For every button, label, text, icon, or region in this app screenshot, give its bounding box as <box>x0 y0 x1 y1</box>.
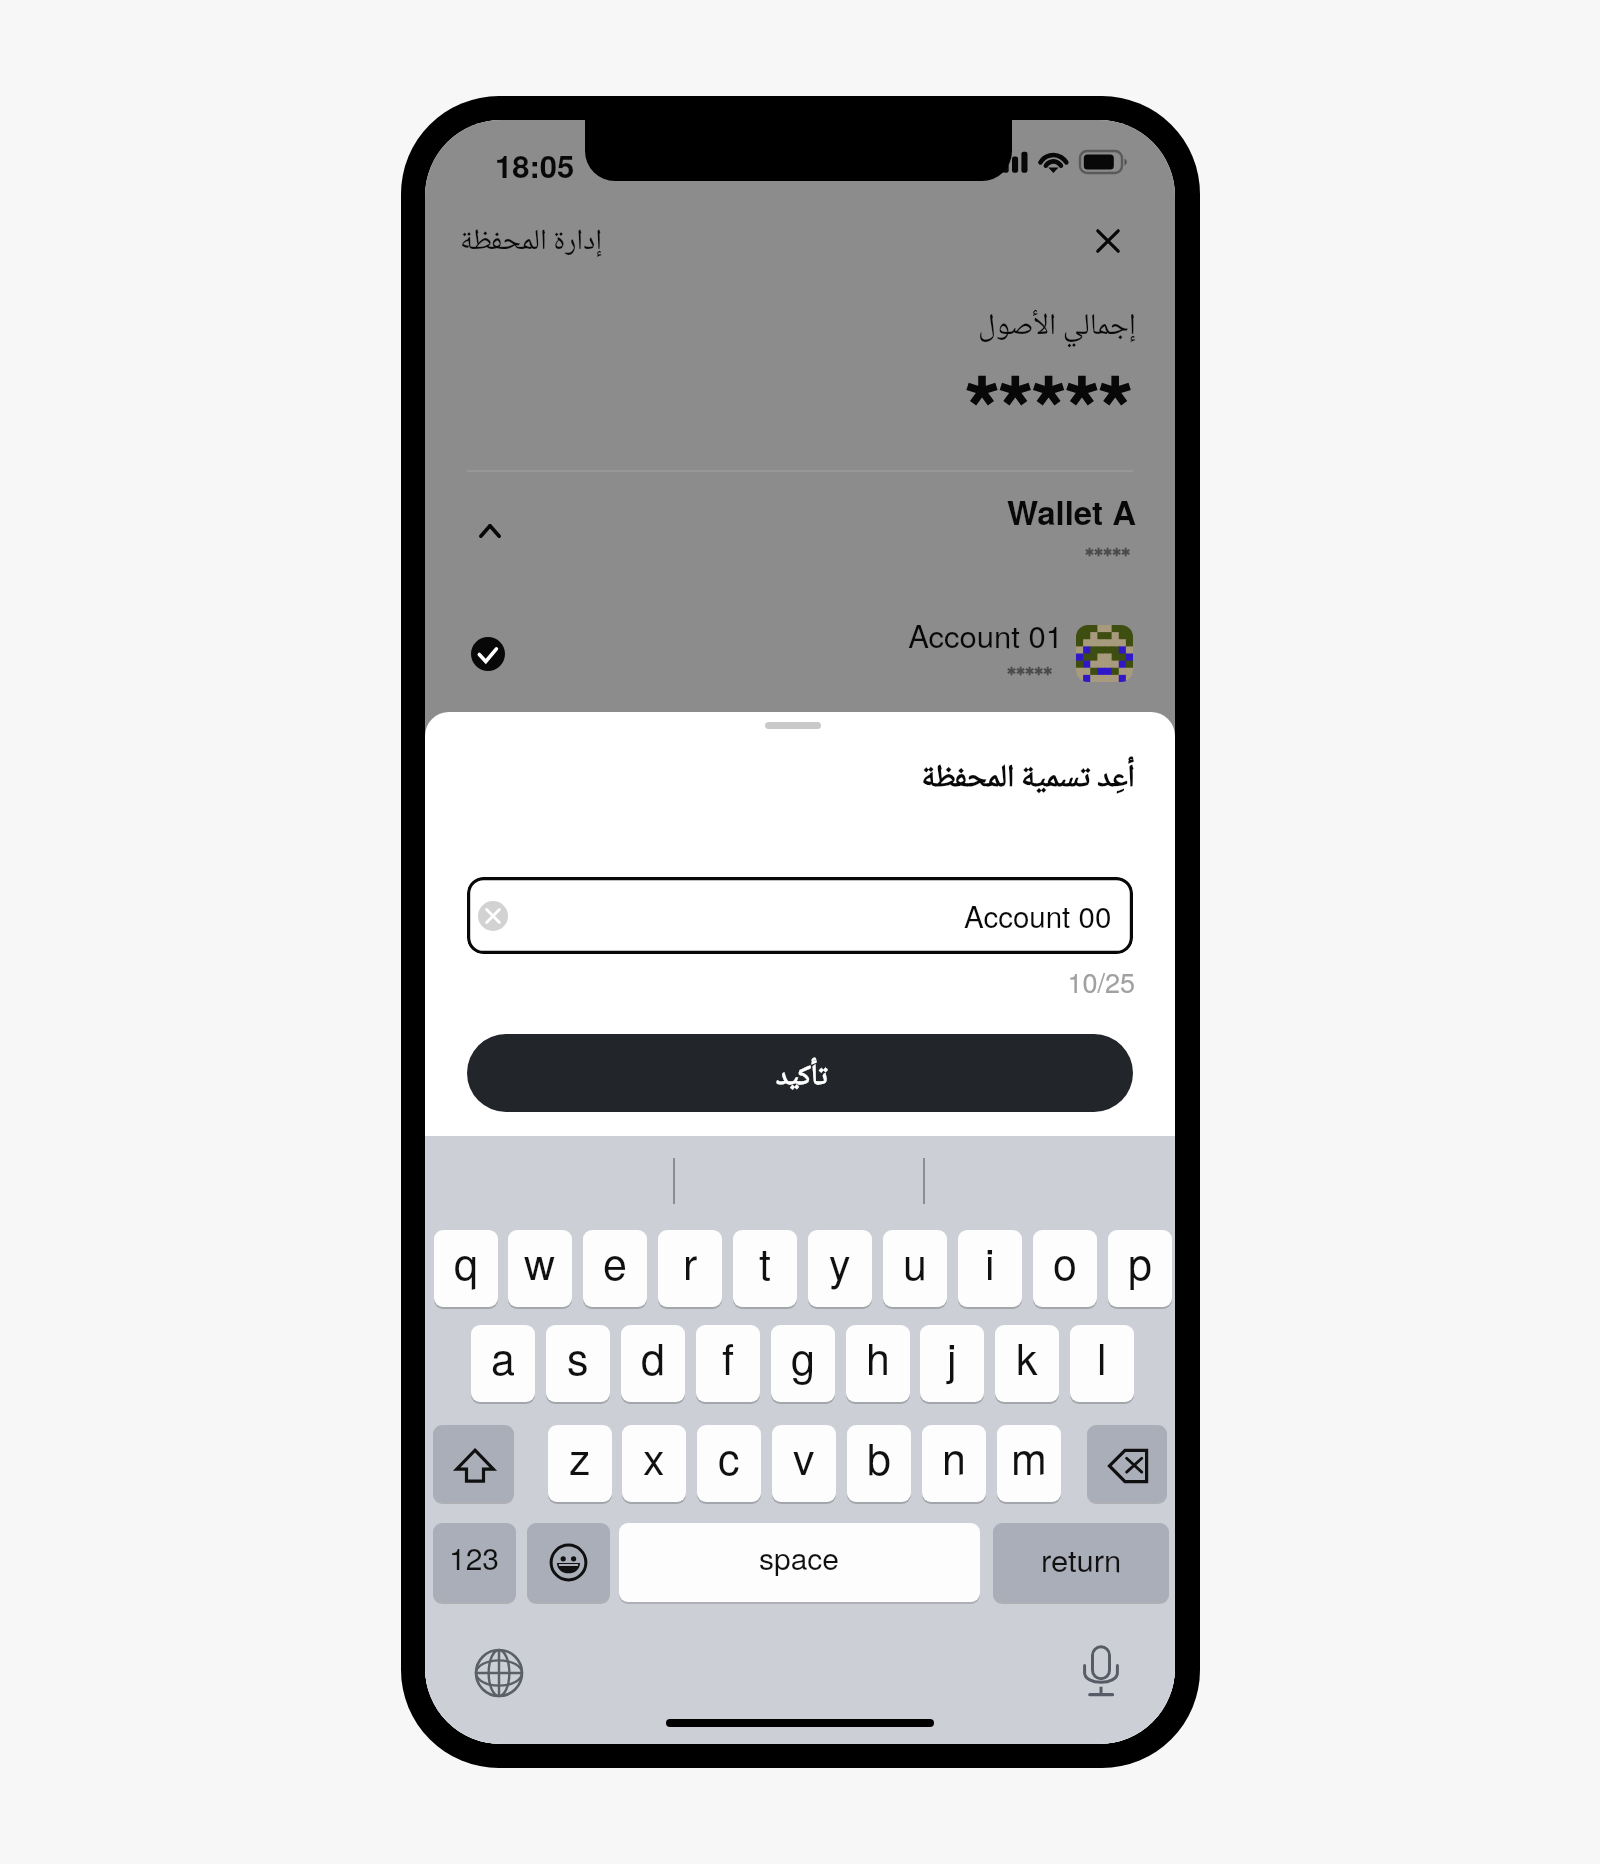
button[interactable]: y <box>808 1230 872 1307</box>
button[interactable]: g <box>771 1325 835 1402</box>
button[interactable]: l <box>1070 1325 1134 1402</box>
button[interactable]: u <box>883 1230 947 1307</box>
staticText: q <box>454 1231 478 1293</box>
button[interactable]: i <box>958 1230 1022 1307</box>
staticText: space <box>759 1536 840 1579</box>
button[interactable]: j <box>920 1325 984 1402</box>
button[interactable] <box>449 480 1151 590</box>
staticText: k <box>1016 1326 1038 1388</box>
button[interactable]: a <box>471 1325 535 1402</box>
staticText: t <box>759 1231 771 1293</box>
staticText: v <box>793 1426 815 1488</box>
staticText: 18:05 <box>495 143 575 187</box>
button[interactable]: k <box>995 1325 1059 1402</box>
button[interactable]: d <box>621 1325 685 1402</box>
staticText: o <box>1053 1231 1077 1293</box>
staticText: e <box>603 1231 627 1293</box>
staticText: إجمالي الأصول <box>425 302 1136 353</box>
button[interactable] <box>449 604 1151 704</box>
staticText: l <box>1097 1326 1107 1388</box>
button[interactable]: c <box>697 1425 761 1502</box>
staticText: u <box>903 1231 927 1293</box>
staticText: j <box>947 1326 957 1388</box>
staticText: s <box>567 1326 589 1388</box>
button[interactable]: v <box>772 1425 836 1502</box>
button[interactable]: Dictate <box>1077 1637 1125 1709</box>
staticText: c <box>718 1426 740 1488</box>
staticText: i <box>985 1231 995 1293</box>
button[interactable]: s <box>546 1325 610 1402</box>
button[interactable]: Emoji <box>527 1523 610 1602</box>
staticText: n <box>942 1426 966 1488</box>
staticText: a <box>491 1326 515 1388</box>
staticText: Wallet A <box>425 488 1136 535</box>
button[interactable]: 123 <box>433 1523 516 1602</box>
button[interactable]: space <box>619 1523 980 1602</box>
button[interactable]: r <box>658 1230 722 1307</box>
button[interactable]: t <box>733 1230 797 1307</box>
staticText: f <box>722 1326 734 1388</box>
button[interactable]: Account selected <box>471 637 505 671</box>
button[interactable]: x <box>622 1425 686 1502</box>
button[interactable]: Change keyboard <box>475 1649 523 1697</box>
button[interactable]: Shift <box>433 1425 514 1502</box>
button[interactable]: e <box>583 1230 647 1307</box>
staticText: z <box>569 1426 591 1488</box>
staticText: w <box>524 1231 556 1293</box>
staticText: 10/25 <box>425 962 1135 1001</box>
button[interactable]: return <box>993 1523 1169 1602</box>
staticText: إدارة المحفظة <box>460 218 603 267</box>
staticText: y <box>829 1231 851 1293</box>
staticText: Account 00 <box>964 894 1112 936</box>
staticText: b <box>867 1426 891 1488</box>
staticText: 123 <box>449 1536 500 1579</box>
staticText: h <box>866 1326 890 1388</box>
button[interactable]: تأكيد <box>467 1034 1133 1112</box>
staticText: d <box>641 1326 665 1388</box>
button[interactable]: n <box>922 1425 986 1502</box>
staticText: r <box>683 1231 698 1293</box>
button[interactable]: o <box>1033 1230 1097 1307</box>
staticText: return <box>1041 1536 1122 1580</box>
staticText: x <box>643 1426 665 1488</box>
staticText: أعِد تسمية المحفظة <box>425 753 1135 806</box>
staticText: Account 01 <box>425 612 1063 656</box>
staticText: p <box>1128 1231 1152 1293</box>
button[interactable]: w <box>508 1230 572 1307</box>
button[interactable]: h <box>846 1325 910 1402</box>
button[interactable]: Backspace <box>1087 1425 1167 1502</box>
button[interactable]: z <box>548 1425 612 1502</box>
button[interactable]: m <box>997 1425 1061 1502</box>
button[interactable]: b <box>847 1425 911 1502</box>
button[interactable]: f <box>696 1325 760 1402</box>
button[interactable]: Account 00 <box>467 877 1133 954</box>
staticText: تأكيد <box>776 1054 828 1102</box>
button[interactable]: q <box>434 1230 498 1307</box>
button[interactable]: Clear text <box>478 901 508 931</box>
button[interactable]: Collapse wallet <box>461 502 519 560</box>
staticText: m <box>1011 1426 1047 1488</box>
button[interactable]: p <box>1108 1230 1172 1307</box>
button[interactable]: Close <box>1078 211 1138 271</box>
staticText: g <box>791 1326 815 1388</box>
